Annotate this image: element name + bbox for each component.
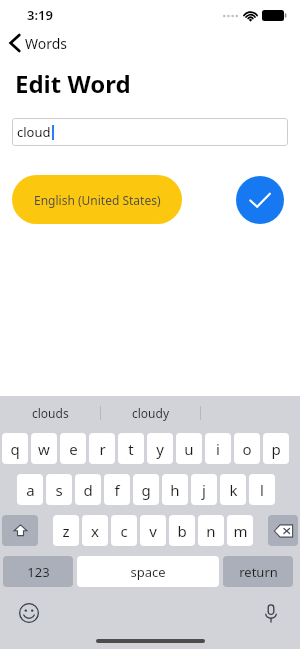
button[interactable]: Backspace	[268, 515, 298, 546]
button[interactable]: d	[75, 474, 101, 505]
button[interactable]: clouds	[0, 396, 100, 430]
staticText: f	[114, 480, 120, 500]
button[interactable]: Dictation	[258, 600, 284, 626]
staticText: w	[38, 439, 50, 459]
staticText: d	[83, 480, 93, 500]
button[interactable]: cloudy	[101, 396, 200, 430]
button[interactable]: Words	[10, 30, 68, 56]
staticText: z	[62, 521, 70, 541]
button[interactable]: n	[198, 515, 224, 546]
button[interactable]: o	[234, 433, 260, 464]
button[interactable]: Shift	[2, 515, 38, 546]
staticText: p	[271, 439, 281, 459]
staticText: clouds	[32, 405, 69, 421]
staticText: q	[10, 439, 20, 459]
button[interactable]: y	[147, 433, 173, 464]
staticText: l	[260, 480, 264, 500]
staticText: t	[128, 439, 134, 459]
button[interactable]: e	[60, 433, 86, 464]
button[interactable]: v	[140, 515, 166, 546]
button[interactable]: Confirm	[236, 176, 284, 224]
button[interactable]: English (United States)	[12, 175, 182, 224]
button[interactable]: j	[191, 474, 217, 505]
button[interactable]: cloud	[12, 118, 288, 146]
staticText: cloud	[17, 123, 51, 141]
staticText: space	[130, 563, 166, 581]
button[interactable]: g	[133, 474, 159, 505]
staticText: m	[233, 521, 248, 541]
button[interactable]: f	[104, 474, 130, 505]
staticText: g	[141, 480, 151, 500]
button[interactable]: s	[46, 474, 72, 505]
button[interactable]: u	[176, 433, 202, 464]
button[interactable]: w	[31, 433, 57, 464]
button[interactable]: r	[89, 433, 115, 464]
staticText: k	[229, 480, 238, 500]
staticText: i	[216, 439, 220, 459]
staticText: s	[55, 480, 63, 500]
button[interactable]: z	[53, 515, 79, 546]
staticText: return	[239, 563, 278, 581]
button[interactable]: p	[263, 433, 289, 464]
button[interactable]: m	[227, 515, 253, 546]
button[interactable]: 123	[3, 556, 73, 587]
staticText: 123	[27, 563, 50, 581]
staticText: c	[120, 521, 128, 541]
staticText: Edit Word	[15, 67, 131, 100]
staticText: English (United States)	[34, 192, 161, 208]
button[interactable]: i	[205, 433, 231, 464]
button[interactable]: q	[2, 433, 28, 464]
button[interactable]: return	[223, 556, 293, 587]
button[interactable]: k	[220, 474, 246, 505]
staticText: x	[91, 521, 99, 541]
staticText: a	[26, 480, 35, 500]
staticText: o	[242, 439, 252, 459]
staticText: n	[206, 521, 216, 541]
staticText: b	[177, 521, 187, 541]
staticText: 3:19	[27, 6, 53, 24]
button[interactable]: x	[82, 515, 108, 546]
button[interactable]: t	[118, 433, 144, 464]
staticText: h	[170, 480, 180, 500]
button[interactable]: Emoji	[16, 600, 42, 626]
staticText: r	[99, 439, 106, 459]
staticText: j	[202, 480, 206, 500]
button[interactable]: c	[111, 515, 137, 546]
staticText: e	[69, 439, 78, 459]
staticText: y	[156, 439, 164, 459]
button[interactable]: l	[249, 474, 275, 505]
staticText: cloudy	[132, 405, 170, 421]
staticText: v	[149, 521, 157, 541]
staticText: u	[184, 439, 194, 459]
button[interactable]: b	[169, 515, 195, 546]
staticText: Words	[25, 34, 68, 53]
button[interactable]: space	[77, 556, 219, 587]
button[interactable]: a	[17, 474, 43, 505]
button[interactable]: h	[162, 474, 188, 505]
